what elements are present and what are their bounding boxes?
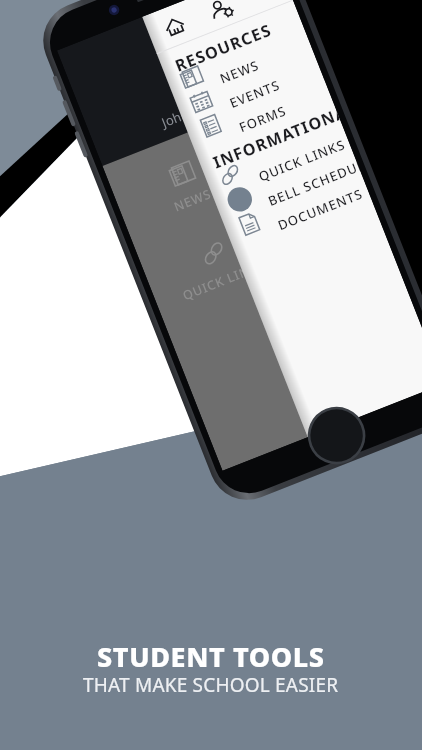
button[interactable]: Student Tools app preview bbox=[0, 0, 422, 750]
